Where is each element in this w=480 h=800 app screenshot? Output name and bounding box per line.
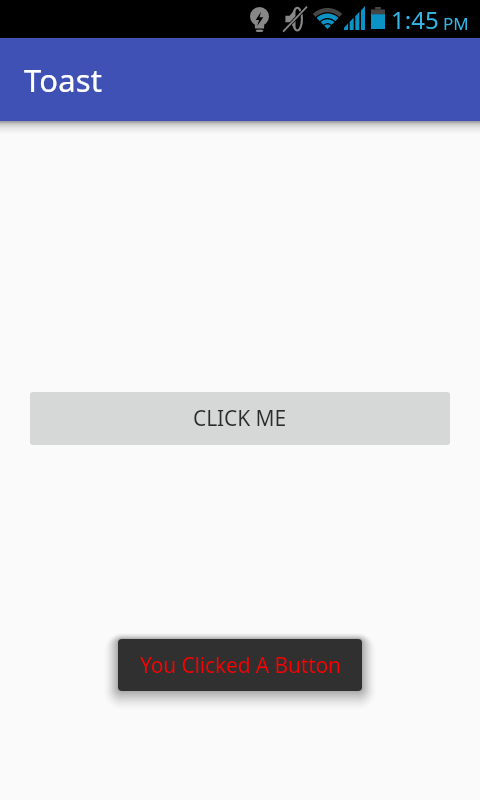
staticText: You Clicked A Button [140, 651, 341, 680]
staticText: 1:45 [391, 3, 439, 36]
staticText: PM [443, 12, 469, 35]
staticText: Toast [24, 59, 103, 101]
staticText: CLICK ME [193, 404, 287, 433]
button[interactable]: CLICK ME [30, 392, 450, 445]
other: Status icons [0, 0, 480, 38]
